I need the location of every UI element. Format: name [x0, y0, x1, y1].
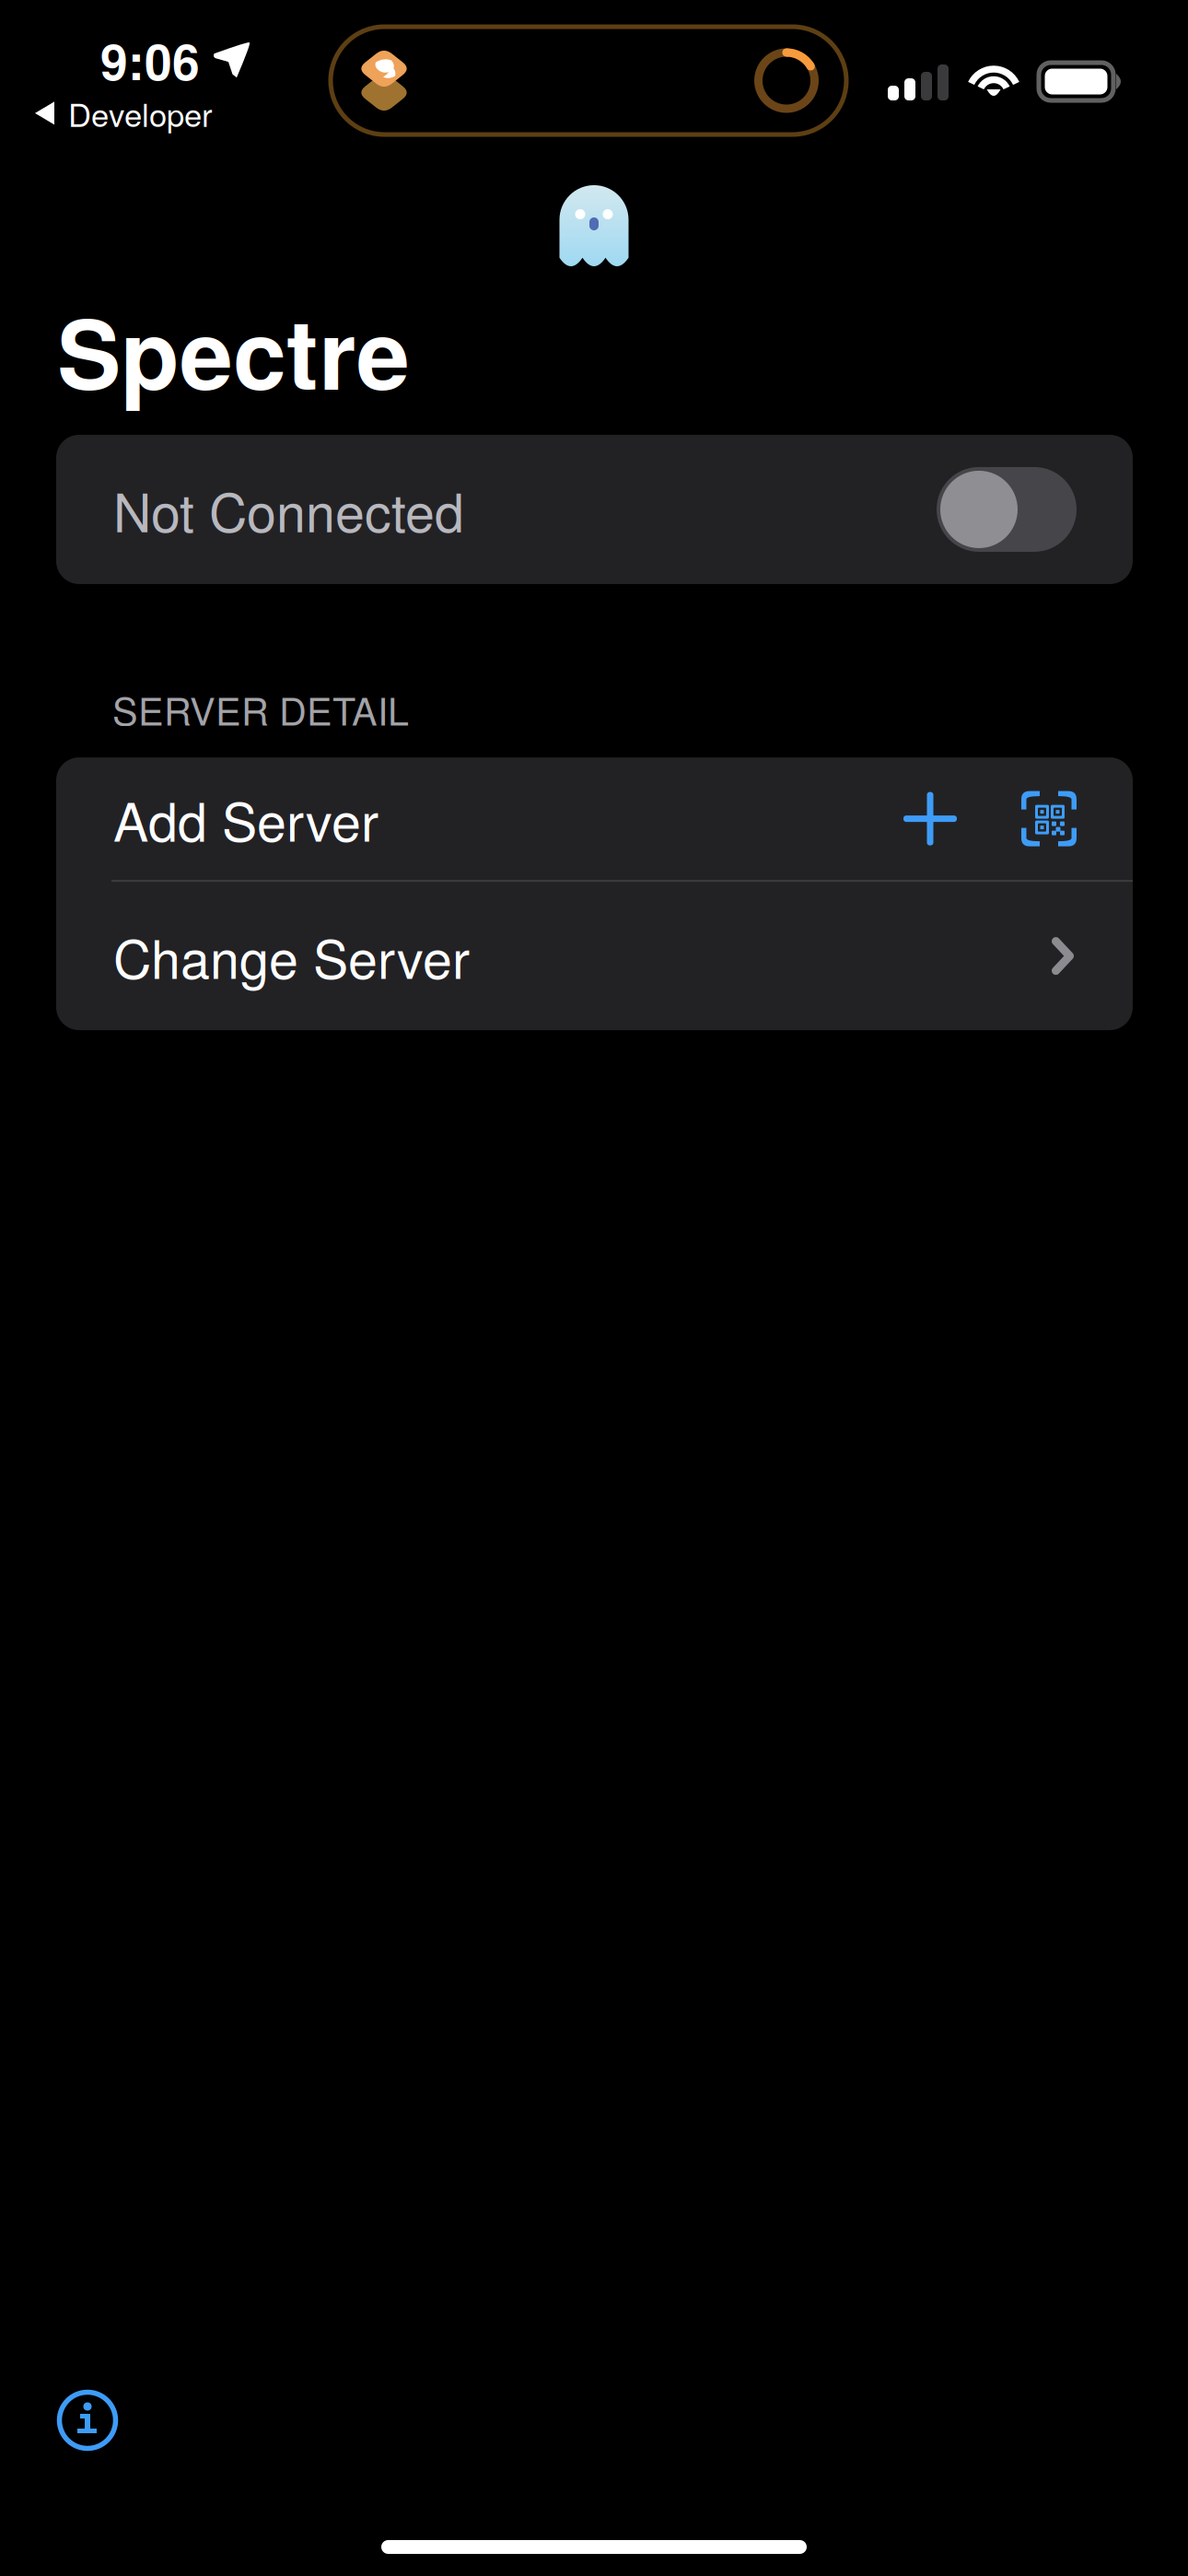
staticText: Change Server: [113, 918, 470, 994]
staticText: Developer: [68, 90, 213, 136]
staticText: Not Connected: [113, 472, 464, 547]
button[interactable]: Change Server: [56, 882, 1133, 1030]
button[interactable]: Not Connected: [0, 435, 1188, 584]
staticText: SERVER DETAIL: [112, 682, 409, 736]
staticText: Add Server: [113, 781, 379, 857]
staticText: 9:06: [100, 25, 200, 95]
button[interactable]: Info: [58, 2391, 117, 2450]
button[interactable]: Add Server: [56, 757, 1133, 880]
staticText: Spectre: [57, 282, 410, 419]
